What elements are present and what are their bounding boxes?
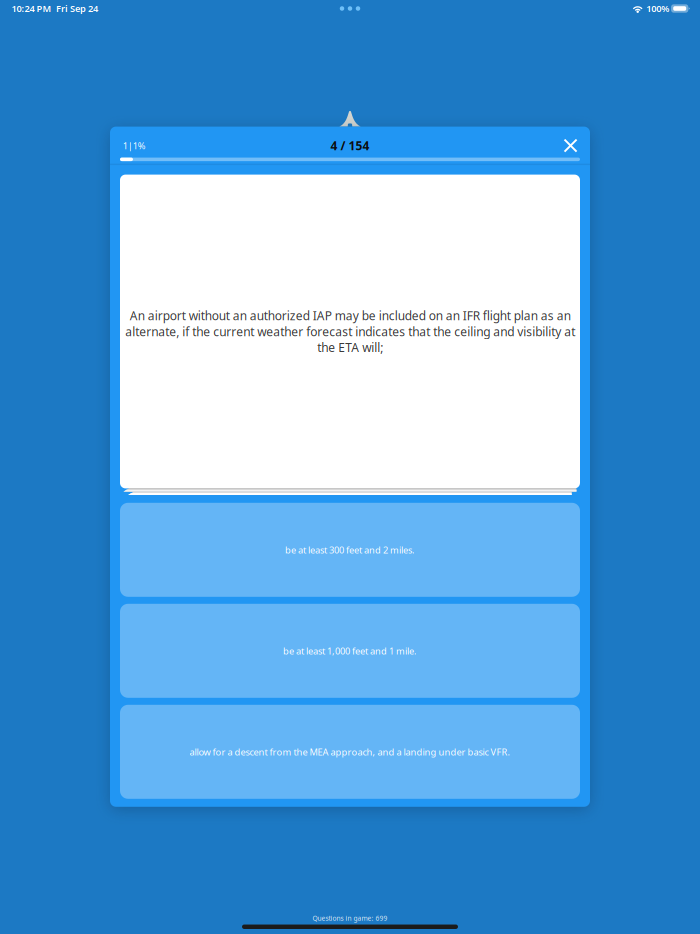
staticText: Fri Sep 24 <box>56 2 98 15</box>
button[interactable]: Close <box>564 139 577 152</box>
button[interactable]: allow for a descent from the MEA approac… <box>120 705 580 799</box>
staticText: 1|1% <box>123 139 146 152</box>
staticText: allow for a descent from the MEA approac… <box>189 746 510 758</box>
staticText: be at least 1,000 feet and 1 mile. <box>283 645 417 657</box>
staticText: Questions in game: 699 <box>312 914 387 922</box>
button[interactable]: be at least 300 feet and 2 miles. <box>120 503 580 597</box>
staticText: be at least 300 feet and 2 miles. <box>285 544 415 556</box>
button[interactable]: be at least 1,000 feet and 1 mile. <box>120 604 580 698</box>
staticText: 10:24 PM <box>11 2 51 15</box>
staticText: 4 / 154 <box>330 138 369 153</box>
staticText: An airport without an authorized IAP may… <box>125 308 575 355</box>
staticText: 100% <box>646 2 669 15</box>
